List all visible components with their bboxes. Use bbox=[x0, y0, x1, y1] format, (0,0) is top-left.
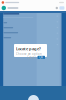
button[interactable]: Cancel bbox=[27, 56, 36, 59]
staticText: Locate page? bbox=[16, 46, 41, 51]
staticText: OK bbox=[39, 56, 43, 59]
button[interactable]: OK bbox=[37, 56, 45, 59]
staticText: Choose an option bbox=[16, 52, 42, 56]
staticText: Cancel bbox=[27, 56, 36, 59]
